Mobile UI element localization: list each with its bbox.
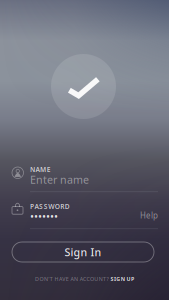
button[interactable]: Sign In	[12, 242, 154, 262]
staticText: SIGN UP	[110, 275, 134, 283]
staticText: NAME	[30, 165, 51, 174]
button[interactable]: NAME	[0, 158, 169, 195]
staticText: Help	[140, 210, 158, 221]
staticText: Sign In	[64, 245, 101, 259]
staticText: DON'T HAVE AN ACCOUNT?	[35, 275, 108, 283]
button[interactable]: DON'T HAVE AN ACCOUNT?	[0, 273, 169, 285]
staticText: •••••••	[30, 209, 58, 224]
staticText	[108, 275, 110, 283]
staticText: PASSWORD	[30, 202, 70, 211]
button[interactable]: PASSWORD	[0, 195, 169, 232]
staticText: Enter name	[30, 172, 89, 187]
